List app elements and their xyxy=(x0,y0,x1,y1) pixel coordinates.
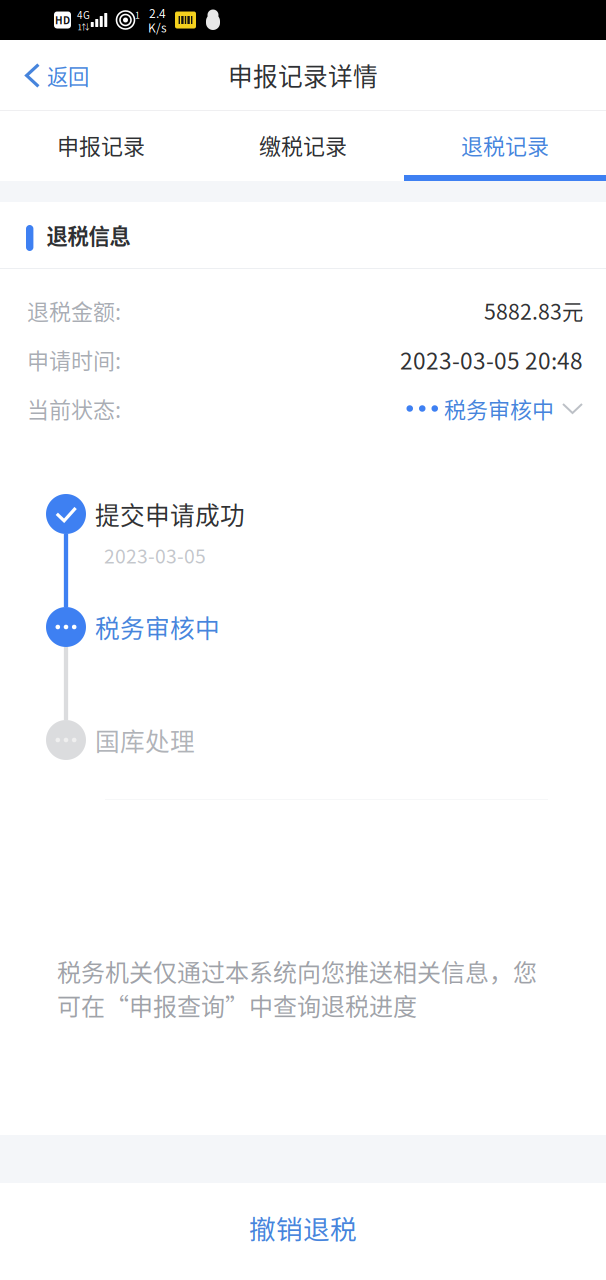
button[interactable]: 当前状态: xyxy=(27,384,583,433)
button[interactable]: 缴税记录 xyxy=(202,111,404,181)
staticText: 退税金额: xyxy=(27,295,121,326)
staticText: 2023-03-05 xyxy=(104,541,206,569)
button[interactable]: 返回 xyxy=(0,40,107,110)
staticText: 退税记录 xyxy=(461,129,549,161)
staticText: 2023-03-05 20:48 xyxy=(400,343,583,376)
staticText: 税务审核中 xyxy=(95,609,220,645)
staticText: 4G xyxy=(77,7,90,22)
staticText: 1 xyxy=(135,9,140,21)
button[interactable]: 退税记录 xyxy=(404,111,606,181)
staticText: K/s xyxy=(148,18,167,36)
button[interactable]: 撤销退税 xyxy=(0,1183,606,1280)
staticText: 税务机关仅通过本系统向您推送相关信息，您 xyxy=(57,954,537,988)
staticText: 退税信息 xyxy=(46,220,130,250)
button[interactable]: 申报记录 xyxy=(0,111,202,181)
staticText: 可在“申报查询”中查询退税进度 xyxy=(57,988,417,1022)
staticText: 5882.83元 xyxy=(484,295,583,326)
staticText: 2.4 xyxy=(149,4,166,21)
staticText: 缴税记录 xyxy=(259,129,347,161)
staticText: 提交申请成功 xyxy=(95,496,245,532)
staticText: 返回 xyxy=(47,60,89,91)
staticText: 申报记录详情 xyxy=(228,57,378,93)
staticText: 撤销退税 xyxy=(249,1208,357,1247)
staticText: 申报记录 xyxy=(57,129,145,161)
staticText: 1⇅ xyxy=(77,21,89,32)
staticText: 当前状态: xyxy=(27,393,121,424)
staticText: 申请时间: xyxy=(27,344,121,375)
staticText: 国库处理 xyxy=(95,722,195,758)
staticText: HD xyxy=(55,13,70,27)
staticText: 税务审核中 xyxy=(444,393,554,424)
